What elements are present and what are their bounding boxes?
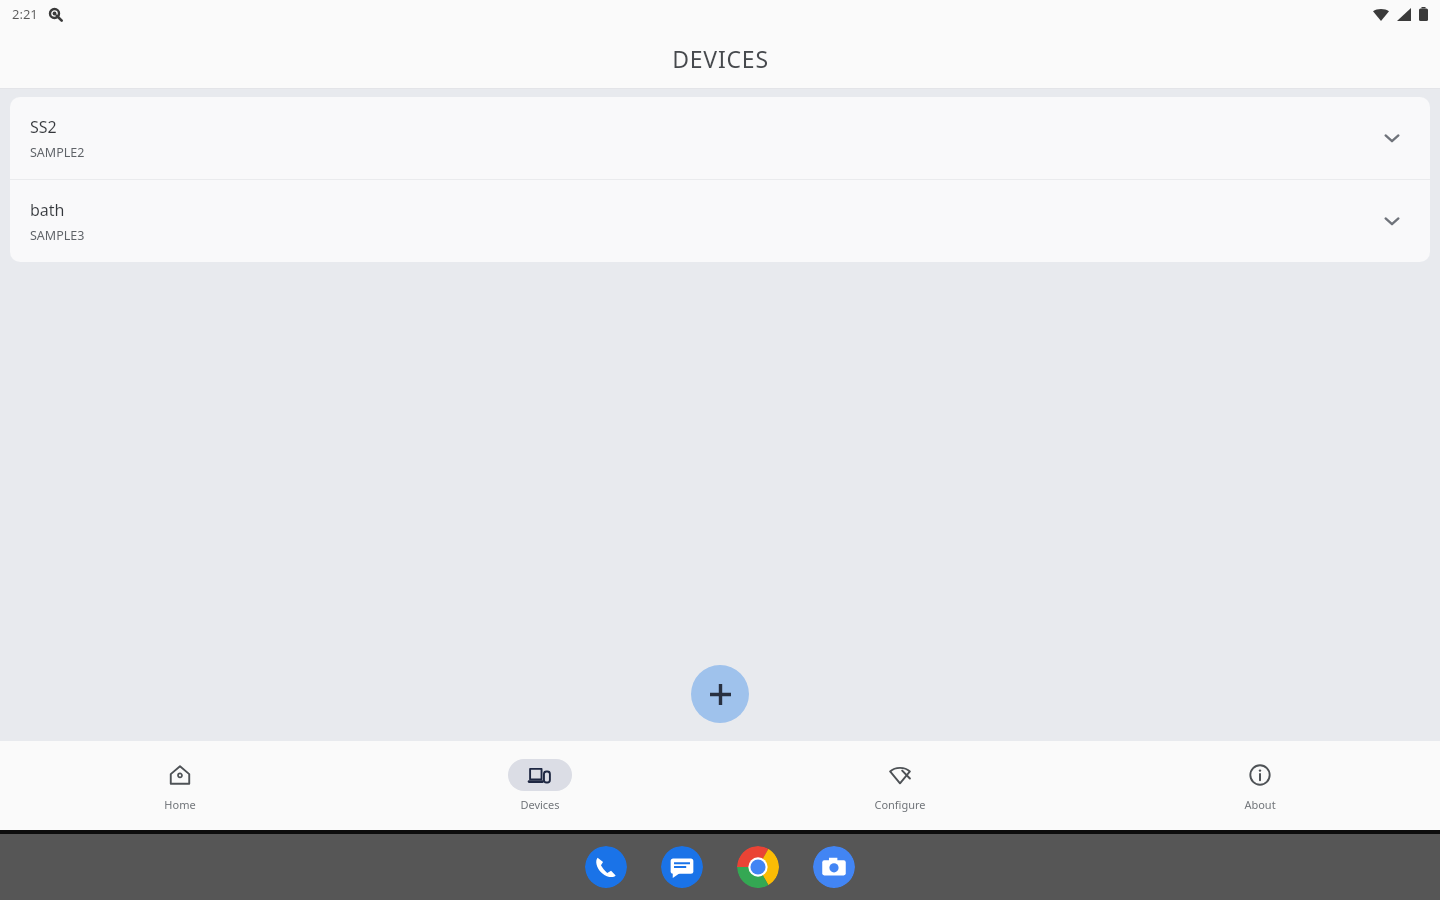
button[interactable]: About xyxy=(1200,755,1320,816)
staticText: Configure xyxy=(874,797,926,812)
button[interactable]: Home xyxy=(120,755,240,816)
staticText: 2:21 xyxy=(12,5,38,23)
button[interactable]: Messages xyxy=(661,846,703,888)
button[interactable]: Configure xyxy=(840,755,960,816)
button[interactable]: Devices xyxy=(480,755,600,816)
button[interactable]: Chrome xyxy=(737,846,779,888)
button[interactable]: Expand bath xyxy=(1378,207,1406,235)
staticText: SS2 xyxy=(30,116,57,138)
staticText: Home xyxy=(164,797,196,812)
staticText: SAMPLE2 xyxy=(30,144,85,161)
button[interactable]: SS2 xyxy=(10,97,1430,179)
staticText: SAMPLE3 xyxy=(30,227,85,244)
button[interactable]: Expand SS2 xyxy=(1378,124,1406,152)
button[interactable]: Add device xyxy=(691,665,749,723)
button[interactable]: bath xyxy=(10,180,1430,262)
staticText: About xyxy=(1244,797,1276,812)
staticText: DEVICES xyxy=(672,43,769,74)
staticText: bath xyxy=(30,199,65,221)
staticText: Devices xyxy=(520,797,560,812)
button[interactable]: Camera xyxy=(813,846,855,888)
button[interactable]: Phone xyxy=(585,846,627,888)
